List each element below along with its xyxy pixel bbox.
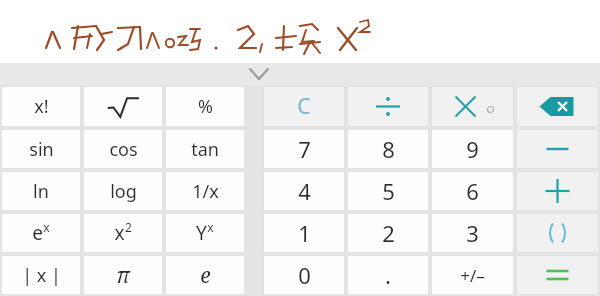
button[interactable]: . <box>347 255 429 295</box>
staticText: x <box>114 220 125 246</box>
staticText: 5 <box>382 176 395 206</box>
staticText: tan <box>191 137 219 162</box>
staticText: e <box>32 220 43 246</box>
staticText: x! <box>34 94 49 119</box>
button[interactable]: 1 <box>263 213 345 253</box>
button[interactable]: 9 <box>431 129 514 169</box>
staticText: C <box>297 92 311 121</box>
staticText: 6 <box>466 176 479 206</box>
button[interactable]: cos <box>83 129 163 169</box>
button[interactable]: Plus <box>516 171 599 211</box>
staticText: ln <box>33 179 49 204</box>
staticText: x <box>43 219 50 235</box>
staticText: . <box>385 260 391 290</box>
button[interactable]: 8 <box>347 129 429 169</box>
staticText: log <box>110 179 137 204</box>
button[interactable]: 5 <box>347 171 429 211</box>
button[interactable]: log <box>83 171 163 211</box>
button[interactable]: 7 <box>263 129 345 169</box>
button[interactable]: π <box>83 255 163 295</box>
button[interactable]: 2 <box>347 213 429 253</box>
staticText: x <box>207 219 214 235</box>
staticText: 4 <box>298 176 311 206</box>
staticText: sin <box>29 137 54 162</box>
button[interactable]: x <box>83 213 163 253</box>
button[interactable]: Multiply <box>431 86 514 127</box>
staticText: 2 <box>125 219 132 235</box>
staticText: 8 <box>382 134 395 164</box>
button[interactable]: sin <box>1 129 81 169</box>
button[interactable]: e <box>165 255 245 295</box>
button[interactable]: 1/x <box>165 171 245 211</box>
button[interactable]: 3 <box>431 213 514 253</box>
button[interactable]: Divide <box>347 86 429 127</box>
staticText: 1/x <box>192 179 219 204</box>
staticText: 9 <box>466 134 479 164</box>
staticText: +/– <box>460 264 485 287</box>
button[interactable]: e <box>1 213 81 253</box>
staticText: π <box>116 261 130 290</box>
button[interactable]: x! <box>1 86 81 127</box>
button[interactable]: +/– <box>431 255 514 295</box>
button[interactable]: 0 <box>263 255 345 295</box>
staticText: Y <box>196 220 207 246</box>
button[interactable]: Y <box>165 213 245 253</box>
button[interactable]: % <box>165 86 245 127</box>
button[interactable]: 4 <box>263 171 345 211</box>
button[interactable]: tan <box>165 129 245 169</box>
button[interactable]: 6 <box>431 171 514 211</box>
staticText: % <box>198 94 213 119</box>
button[interactable]: Equals <box>516 255 599 295</box>
button[interactable]: | x | <box>1 255 81 295</box>
staticText: 1 <box>298 218 311 248</box>
staticText: e <box>200 261 211 290</box>
button[interactable]: Minus <box>516 129 599 169</box>
staticText: 3 <box>466 218 479 248</box>
button[interactable] <box>83 86 163 127</box>
staticText: 0 <box>298 260 311 290</box>
button[interactable]: Parentheses <box>516 213 599 253</box>
button[interactable]: C <box>263 86 345 127</box>
staticText: 2 <box>382 218 395 248</box>
staticText: 7 <box>298 134 311 164</box>
staticText: | x | <box>22 263 61 288</box>
button[interactable]: Backspace <box>516 86 599 127</box>
staticText: cos <box>109 137 138 162</box>
button[interactable]: ln <box>1 171 81 211</box>
button[interactable]: Collapse keypad <box>242 63 276 85</box>
